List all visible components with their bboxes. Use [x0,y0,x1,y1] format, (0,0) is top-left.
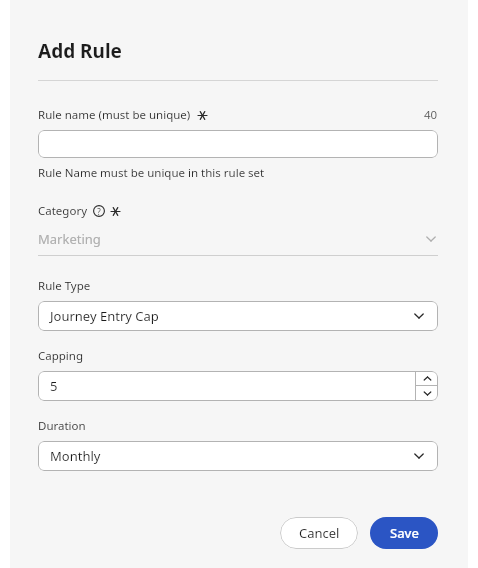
staticText: Rule Name must be unique in this rule se… [38,165,265,181]
button[interactable]: 5 [38,371,415,401]
button[interactable]: Cancel [280,517,358,549]
staticText: Category [38,203,88,219]
staticText: 40 [424,107,438,123]
staticText: Rule name (must be unique) [38,107,191,123]
button[interactable] [38,130,438,158]
button[interactable]: Journey Entry Cap [38,301,438,331]
staticText: Add Rule [38,38,122,64]
staticText: Capping [38,348,84,364]
staticText: 5 [50,377,58,395]
staticText: Monthly [50,447,101,465]
staticText: Cancel [299,524,340,542]
staticText: Marketing [38,230,101,248]
staticText: ? [97,206,101,217]
staticText: Duration [38,418,86,434]
button[interactable]: Increase [416,371,438,385]
staticText: Rule Type [38,278,91,294]
button[interactable]: Decrease [416,386,438,401]
button[interactable]: Marketing [38,229,438,256]
button[interactable]: Monthly [38,441,438,471]
staticText: Save [390,524,419,542]
button[interactable]: Help about category [93,205,105,217]
button[interactable]: Save [370,517,438,549]
staticText: Journey Entry Cap [50,307,159,325]
